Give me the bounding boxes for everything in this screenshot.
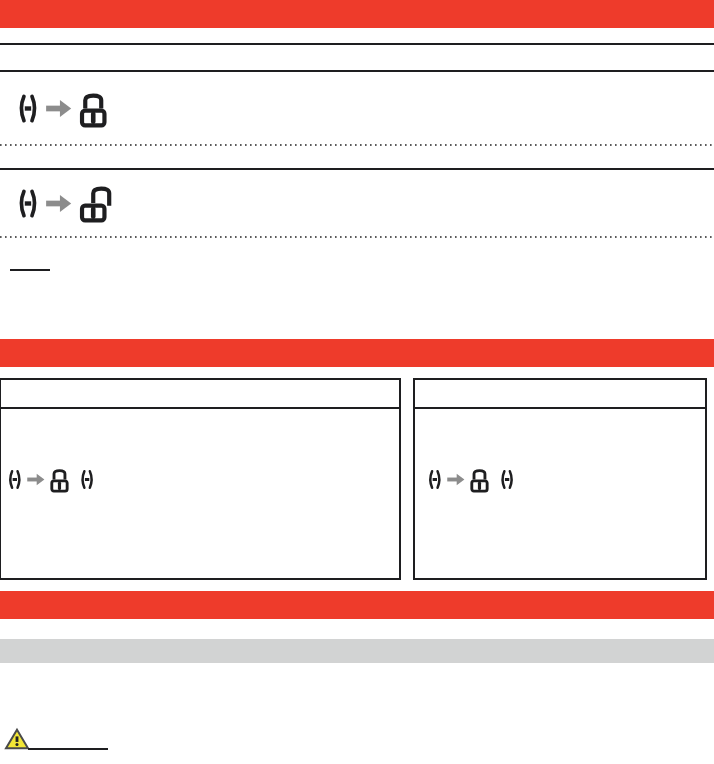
button[interactable]: Unlocked bbox=[18, 175, 113, 232]
button[interactable]: Locked bbox=[18, 80, 113, 137]
button[interactable]: Locked item, right panel bbox=[414, 379, 706, 579]
button[interactable]: Locked item, left panel bbox=[0, 379, 400, 579]
button[interactable]: Warning bbox=[6, 728, 28, 750]
button[interactable]: Locked item, right panel bbox=[428, 460, 522, 499]
button[interactable]: Locked item, left panel bbox=[8, 460, 102, 499]
